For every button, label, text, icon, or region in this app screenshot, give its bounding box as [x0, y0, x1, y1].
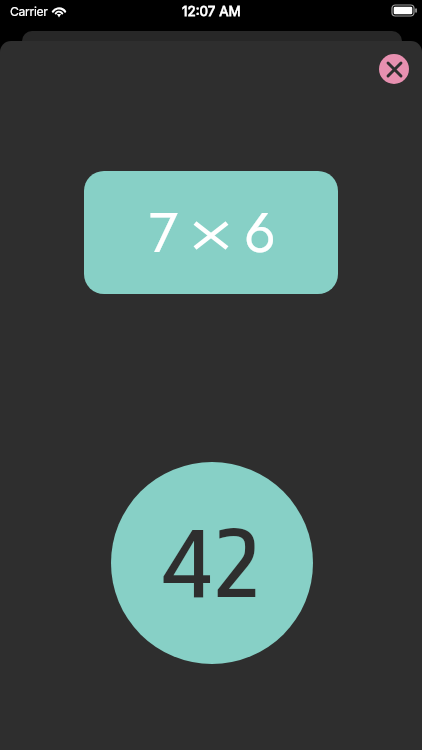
button[interactable]: Close — [379, 54, 409, 84]
staticText: 42 — [164, 503, 260, 623]
button[interactable]: Answer 42 — [111, 462, 313, 664]
staticText: 6 — [244, 193, 276, 272]
staticText: 7 — [149, 193, 178, 272]
staticText: Carrier — [10, 4, 48, 19]
button[interactable]: Question 7 times 6 — [84, 171, 338, 294]
staticText: 12:07 AM — [182, 3, 241, 19]
